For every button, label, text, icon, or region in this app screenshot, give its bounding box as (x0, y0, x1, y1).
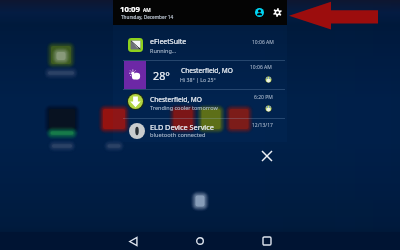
button[interactable]: Chesterfield, MO (113, 90, 287, 118)
staticText: ELD Device Service (150, 122, 214, 132)
button[interactable]: Home (190, 232, 210, 250)
staticText: Hi 38° | Lo 25° (180, 76, 216, 83)
staticText: 10:09 (120, 4, 141, 15)
staticText: 28° (153, 68, 170, 83)
staticText: 10:06 AM (252, 39, 274, 46)
staticText: Chesterfield, MO (150, 95, 202, 104)
button[interactable]: eFleetSuite (113, 25, 287, 60)
staticText: eFleetSuite (150, 37, 187, 47)
button[interactable]: Recent apps (257, 232, 277, 250)
staticText: Chesterfield, MO (181, 66, 233, 75)
button[interactable]: ELD Device Service (113, 118, 287, 142)
staticText: bluetooth connected (150, 131, 206, 139)
button[interactable]: 28° (113, 60, 287, 90)
staticText: Thursday, December 14 (121, 14, 174, 20)
staticText: 6:20 PM (254, 94, 273, 101)
staticText: AM (143, 7, 151, 14)
staticText: Trending cooler tomorrow (150, 104, 218, 111)
button[interactable]: Dismiss all notifications (257, 146, 277, 166)
button[interactable]: User profile (252, 5, 266, 19)
button[interactable]: Back (123, 232, 143, 250)
staticText: Running… (150, 47, 177, 54)
staticText: 12/13/17 (252, 122, 273, 129)
button[interactable]: Settings (270, 5, 284, 19)
staticText: 10:06 AM (250, 64, 272, 71)
